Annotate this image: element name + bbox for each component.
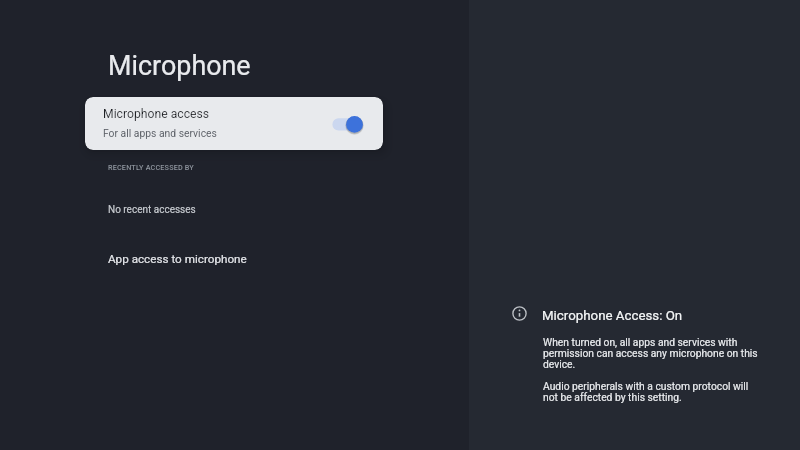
- other: Information: [512, 306, 527, 321]
- staticText: Microphone: [108, 50, 251, 82]
- button[interactable]: Microphone access: [85, 97, 383, 150]
- staticText: App access to microphone: [108, 252, 247, 266]
- button[interactable]: No recent accesses: [85, 192, 383, 224]
- staticText: No recent accesses: [108, 204, 196, 216]
- staticText: For all apps and services: [103, 127, 217, 139]
- button[interactable]: App access to microphone: [85, 240, 383, 274]
- staticText: Microphone access: [103, 107, 210, 121]
- button[interactable]: Microphone access, on: [333, 113, 365, 135]
- staticText: RECENTLY ACCESSED BY: [108, 163, 194, 171]
- staticText: When turned on, all apps and services wi…: [543, 336, 758, 403]
- staticText: Microphone Access: On: [542, 308, 683, 324]
